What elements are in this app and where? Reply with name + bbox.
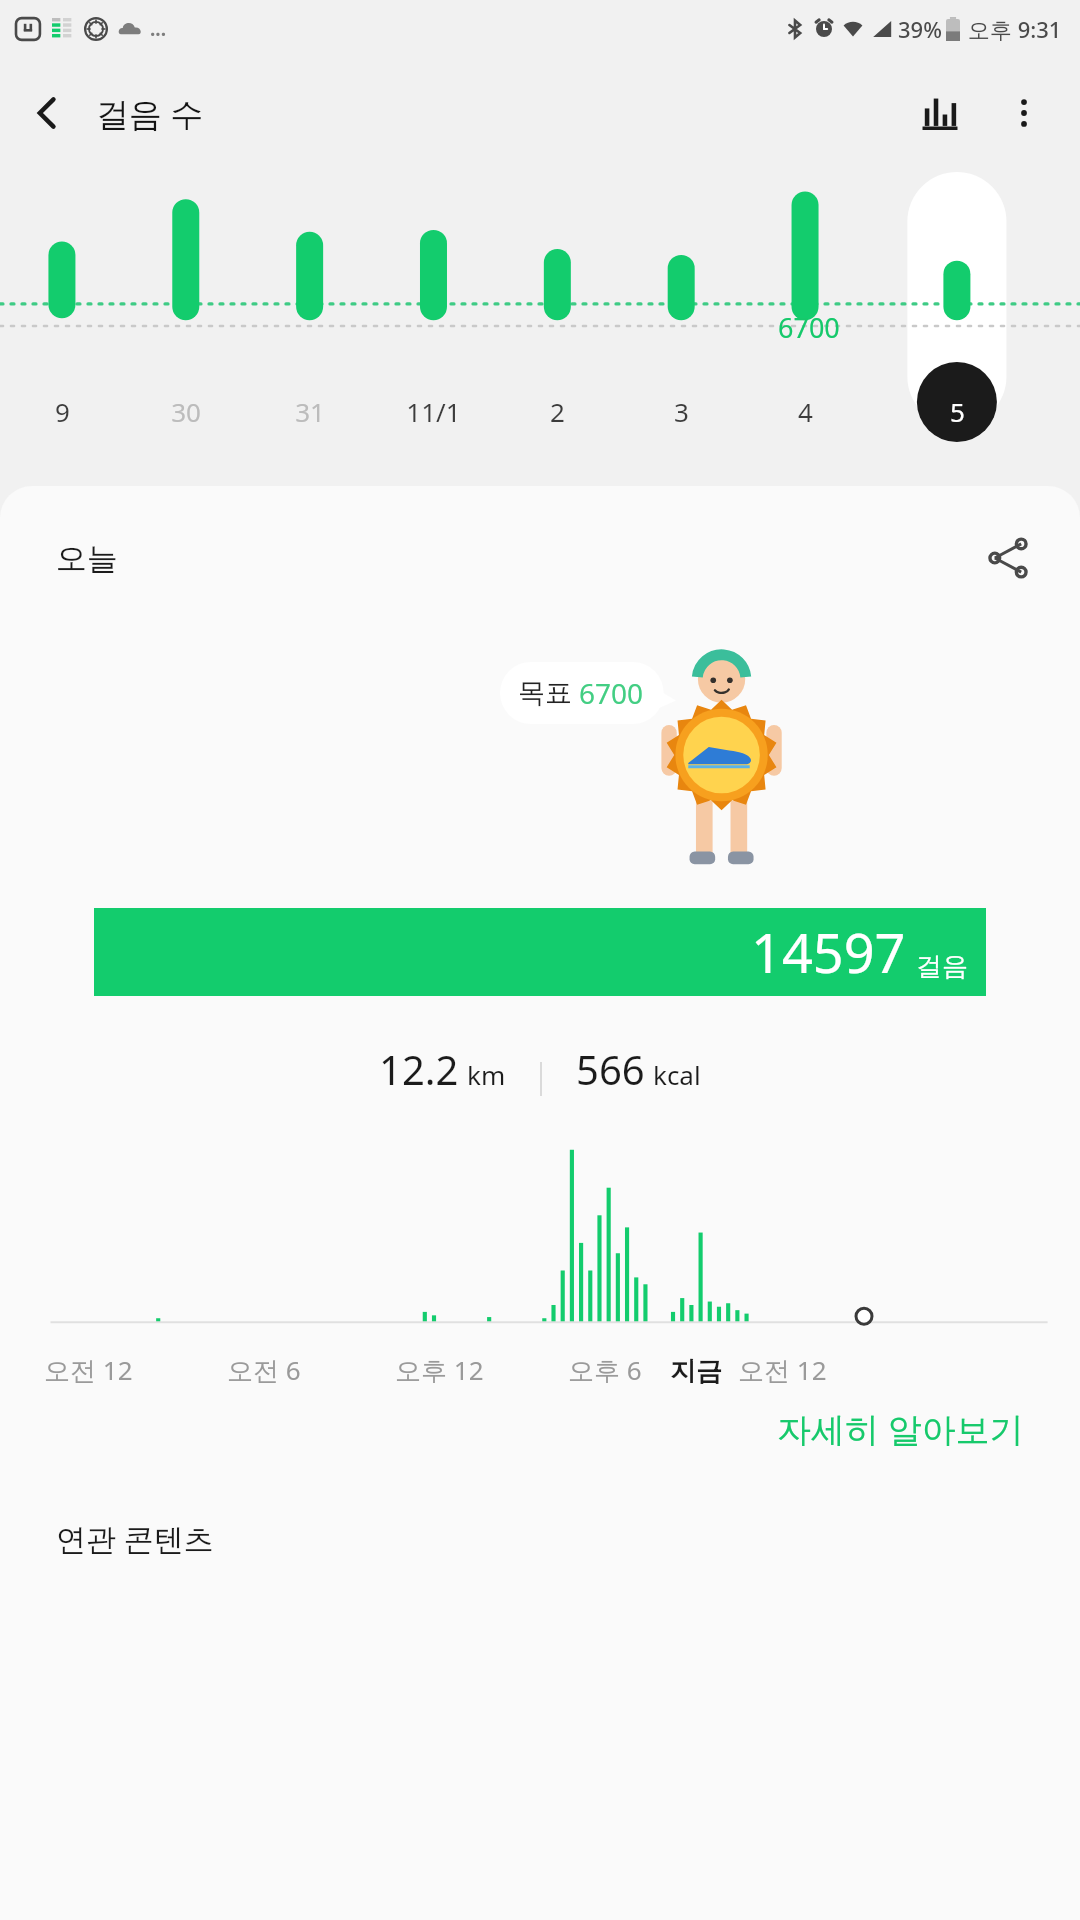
button[interactable]: 31 [250,386,370,436]
button[interactable]: 4 [745,386,865,436]
staticText: 3 [674,394,689,429]
button[interactable]: Back [0,65,96,161]
staticText: 11/1 [406,394,461,429]
staticText: kcal [653,1057,701,1092]
button[interactable]: Chart [898,71,982,155]
button[interactable]: Share [970,520,1046,596]
staticText: 6700 [778,309,840,346]
staticText: 지금 [670,1355,722,1388]
staticText: 14597 [751,915,906,989]
staticText: 목표 [518,676,572,710]
staticText: 걸음 [916,950,968,983]
staticText: km [467,1057,506,1092]
staticText: 오후 9:31 [968,14,1062,44]
staticText: 오전 12 [738,1352,827,1388]
button[interactable]: 9 [2,386,122,436]
staticText: 9 [55,394,70,429]
staticText: 오후 12 [395,1352,484,1388]
button[interactable]: 2 [497,386,617,436]
button[interactable]: 자세히 알아보기 [769,1396,1032,1462]
staticText: 오늘 [56,539,118,578]
staticText: 걸음 수 [96,91,204,136]
staticText: 12.2 [379,1042,459,1096]
staticText: 2 [550,394,565,429]
staticText: 30 [171,394,201,429]
staticText: 39% [898,14,942,44]
staticText: 5 [950,394,965,429]
button[interactable]: More options [982,71,1066,155]
staticText: 566 [576,1042,645,1096]
staticText: 31 [295,394,325,429]
staticText: ... [150,16,167,42]
staticText: 4 [798,394,813,429]
staticText: 오전 6 [227,1352,301,1388]
button[interactable]: 11/1 [373,386,493,436]
button[interactable]: 5 [897,386,1017,436]
staticText: 오후 6 [568,1352,642,1388]
button[interactable]: 30 [126,386,246,436]
button[interactable]: 3 [621,386,741,436]
staticText: 오전 12 [44,1352,133,1388]
staticText: 연관 콘텐츠 [56,1518,214,1559]
staticText: 자세히 알아보기 [777,1406,1024,1452]
staticText: 6700 [579,674,644,712]
button[interactable]: 14597 [94,908,986,996]
